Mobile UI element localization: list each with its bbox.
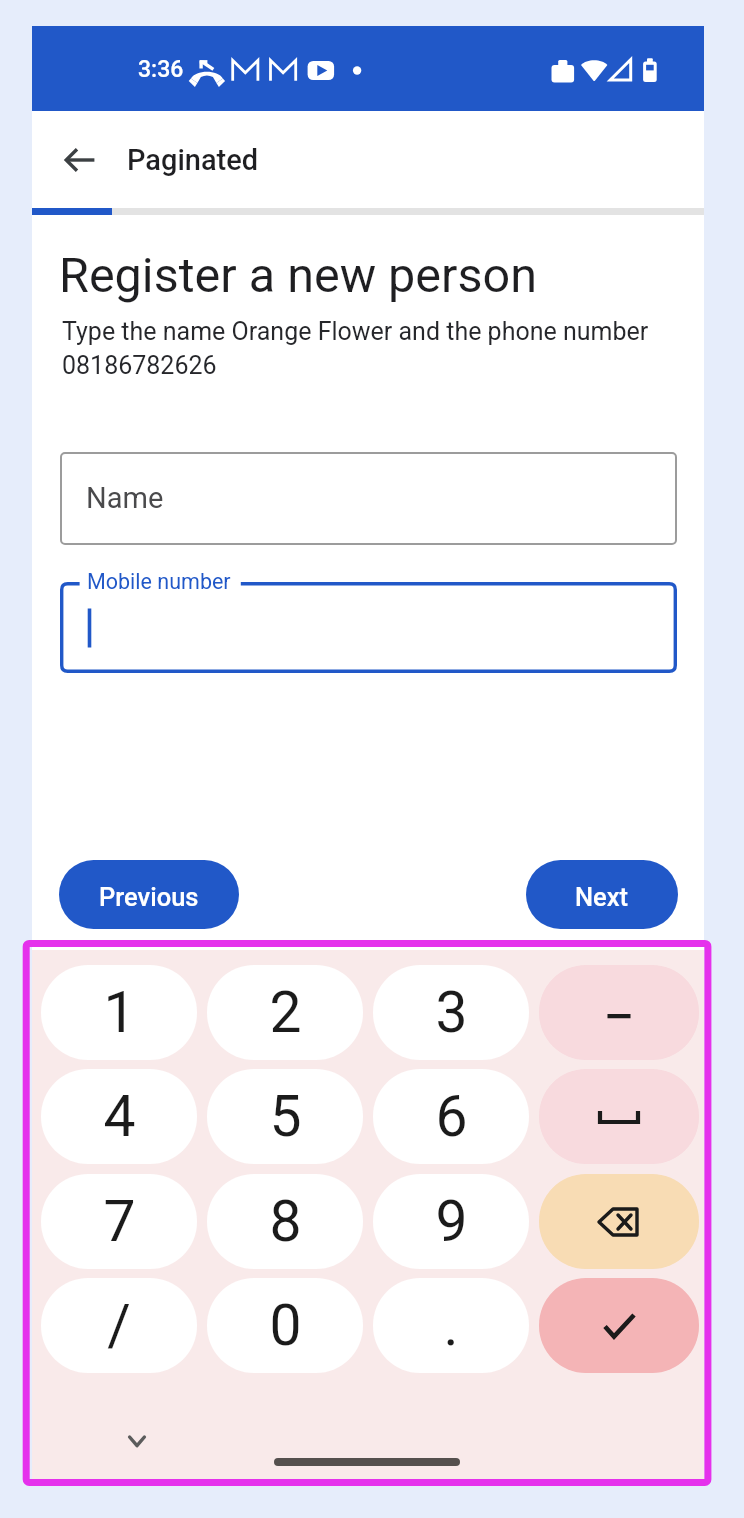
button[interactable]: Next: [526, 860, 678, 929]
button[interactable]: Previous: [59, 860, 239, 929]
staticText: 5: [269, 1083, 302, 1150]
staticText: 7: [103, 1188, 136, 1255]
button[interactable]: Hide keyboard: [113, 1418, 161, 1466]
staticText: .: [443, 1292, 459, 1359]
button[interactable]: 1: [41, 965, 197, 1060]
staticText: 2: [269, 979, 302, 1046]
button[interactable]: 0: [207, 1278, 363, 1373]
button[interactable]: 2: [207, 965, 363, 1060]
staticText: Name: [86, 481, 164, 515]
staticText: 9: [435, 1188, 468, 1255]
button[interactable]: 6: [373, 1069, 529, 1164]
button[interactable]: 8: [207, 1174, 363, 1269]
staticText: Next: [575, 882, 629, 912]
button[interactable]: Backspace: [539, 1174, 699, 1269]
button[interactable]: Dash: [539, 965, 699, 1060]
staticText: 3:36: [138, 56, 184, 83]
staticText: Register a new person: [59, 247, 537, 304]
staticText: 3: [435, 979, 468, 1046]
staticText: Type the name Orange Flower and the phon…: [62, 317, 702, 380]
staticText: Mobile number: [87, 569, 231, 594]
button[interactable]: Done: [539, 1278, 699, 1373]
button[interactable]: Space: [539, 1069, 699, 1164]
button[interactable]: Back: [55, 135, 104, 184]
button[interactable]: /: [41, 1278, 197, 1373]
button[interactable]: 4: [41, 1069, 197, 1164]
button[interactable]: .: [373, 1278, 529, 1373]
button[interactable]: 9: [373, 1174, 529, 1269]
button[interactable]: Mobile number: [60, 582, 677, 673]
staticText: 1: [103, 979, 136, 1046]
button[interactable]: 3: [373, 965, 529, 1060]
staticText: /: [107, 1292, 131, 1359]
staticText: Previous: [99, 882, 199, 912]
staticText: 8: [269, 1188, 302, 1255]
staticText: 4: [103, 1083, 136, 1150]
button[interactable]: 7: [41, 1174, 197, 1269]
staticText: 0: [269, 1292, 302, 1359]
staticText: 6: [435, 1083, 468, 1150]
button[interactable]: 5: [207, 1069, 363, 1164]
button[interactable]: Name: [60, 452, 677, 545]
staticText: Paginated: [127, 143, 259, 177]
